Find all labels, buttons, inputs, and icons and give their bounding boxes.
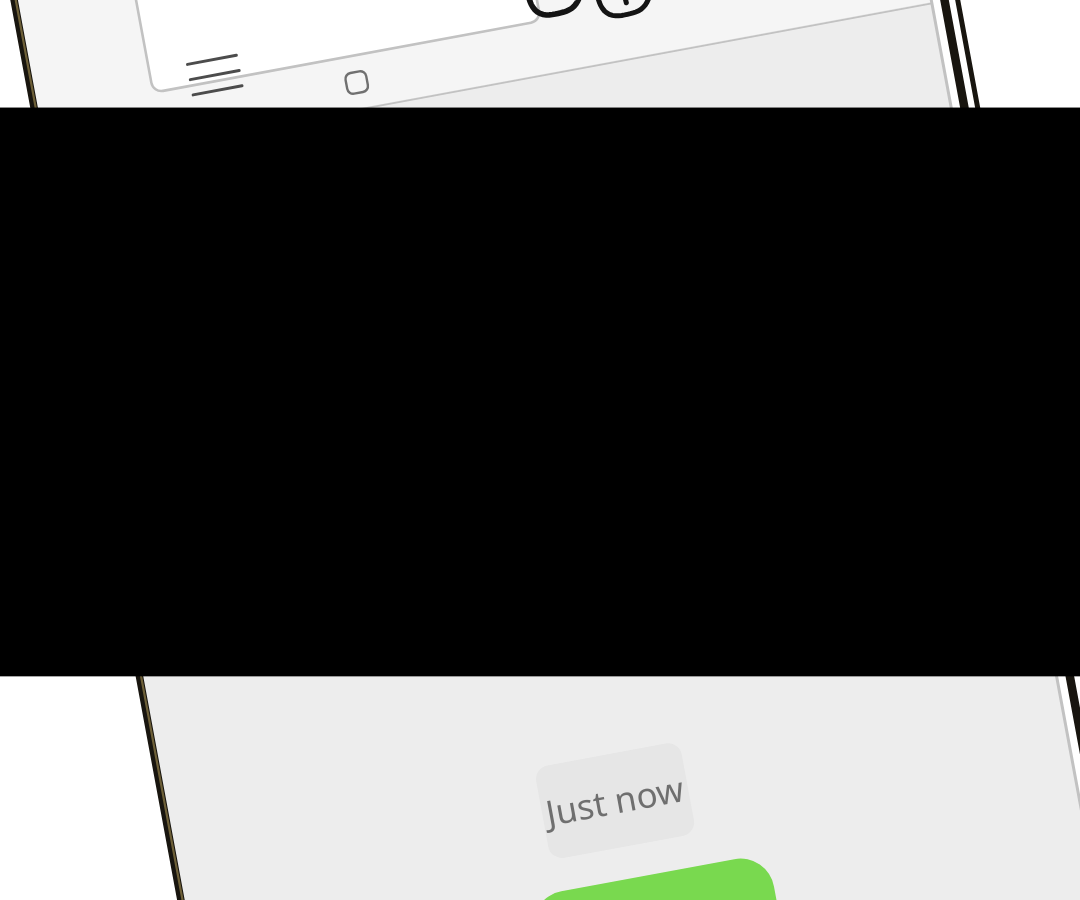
button[interactable]: Hand drawn phone showing a chat screen [0, 0, 1080, 900]
